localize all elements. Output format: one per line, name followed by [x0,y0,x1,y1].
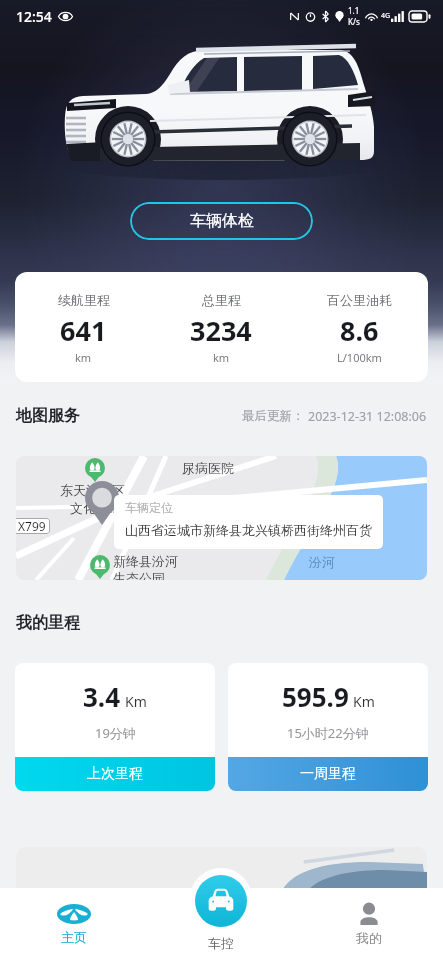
staticText: 一周里程 [300,765,356,783]
staticText: Km [353,692,375,711]
staticText: 4G [381,11,391,21]
staticText: 最后更新： [242,408,305,424]
staticText: 8.6 [340,312,379,349]
staticText: 续航里程 [58,292,110,308]
staticText: K/s [348,16,360,27]
staticText: 2023-12-31 12:08:06 [308,408,427,425]
button[interactable]: 车控 [195,875,247,927]
staticText: km [213,350,230,365]
staticText: X799 [18,518,46,534]
staticText: 尿病医院 [182,460,234,476]
staticText: 641 [60,312,107,349]
staticText: 3234 [190,312,252,349]
button[interactable]: 车辆体检 [130,202,313,240]
staticText: 总里程 [202,292,241,308]
staticText: 车辆体检 [190,211,254,231]
staticText: 595.9 [282,679,349,714]
staticText: Km [125,692,147,711]
staticText: 上次里程 [87,765,143,783]
staticText: 15小时22分钟 [287,724,369,742]
button[interactable]: 主页 [0,888,147,960]
button[interactable]: 我的 [295,888,443,960]
staticText: 我的 [356,930,382,946]
staticText: 3.4 [83,679,121,714]
staticText: 车辆定位 [125,500,173,515]
staticText: L/100km [337,350,382,365]
staticText: 新绛县汾河 [113,553,178,569]
staticText: 车控 [208,935,234,951]
staticText: 地图服务 [16,406,80,426]
staticText: 1.1 [348,5,360,16]
staticText: 主页 [61,929,87,945]
staticText: 山西省运城市新绛县龙兴镇桥西街绛州百货 [125,522,372,538]
staticText: 我的里程 [16,613,80,633]
staticText: 生态公园 [113,570,165,580]
staticText: 东天池社区 [60,482,125,498]
button[interactable]: 595.9 [228,663,428,791]
staticText: 文化广… [70,499,120,517]
button[interactable]: 尿病医院 [16,456,427,580]
button[interactable]: 3.4 [15,663,215,791]
staticText: 汾河 [309,554,335,570]
staticText: 12:54 [16,7,52,26]
staticText: km [75,350,92,365]
staticText: 19分钟 [95,724,136,742]
staticText: 百公里油耗 [327,292,392,308]
